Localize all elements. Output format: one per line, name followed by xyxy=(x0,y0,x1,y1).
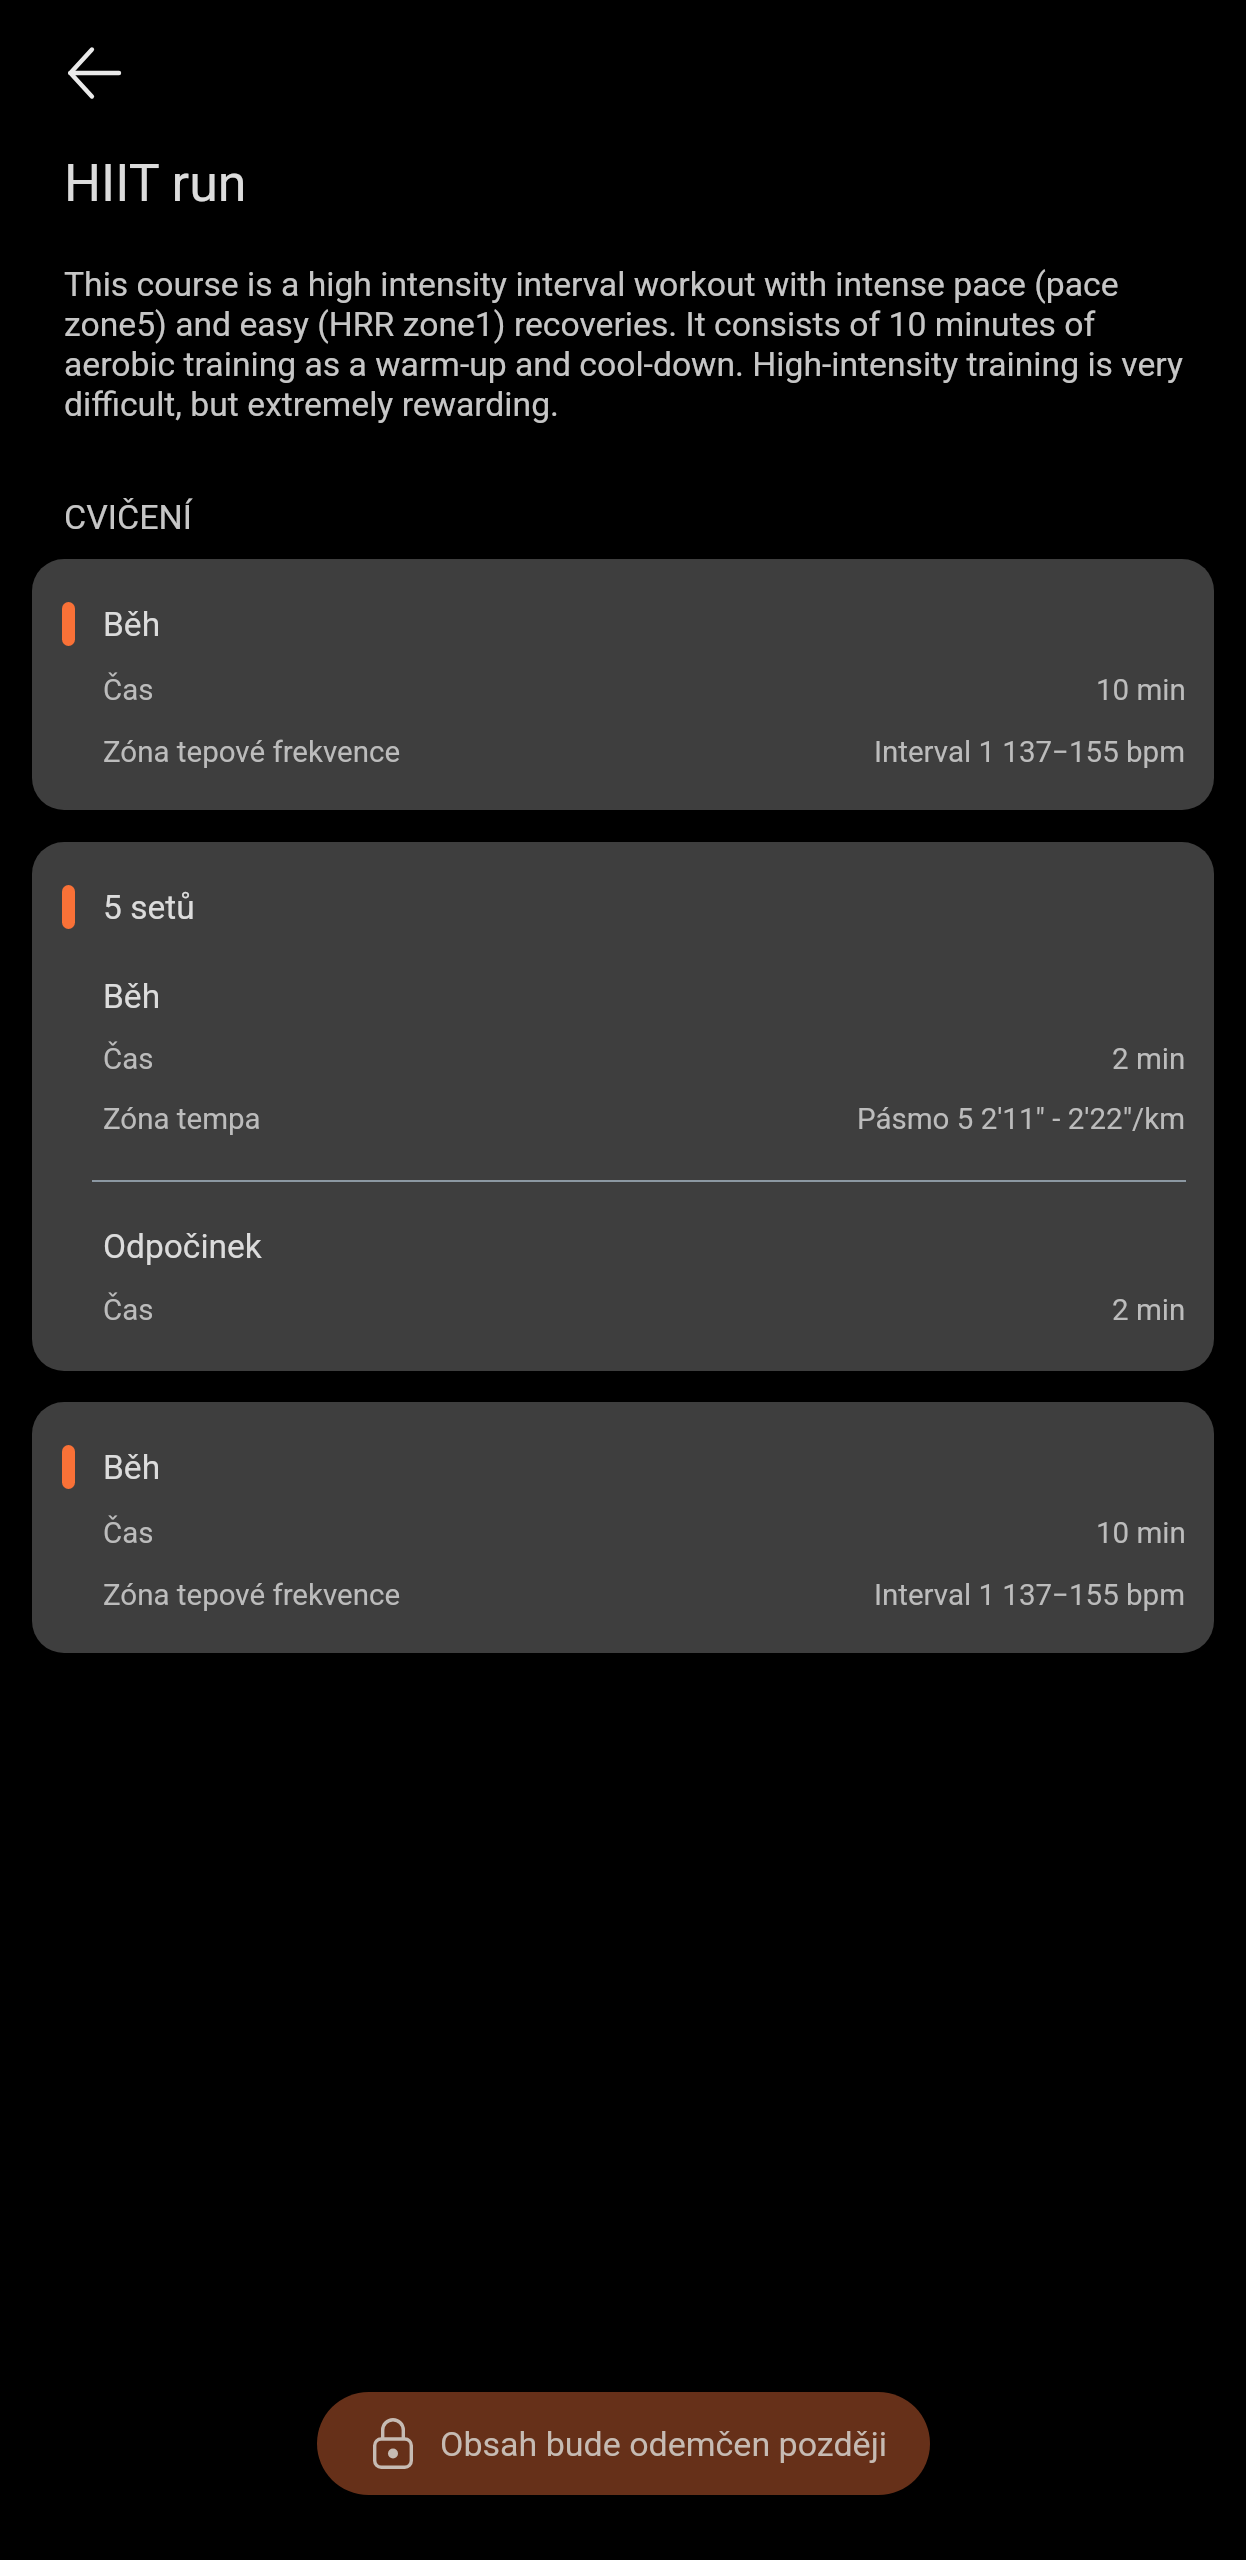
staticText: Pásmo 5 2'11" - 2'22"/km xyxy=(857,1102,1186,1137)
staticText: HIIT run xyxy=(64,153,247,214)
staticText: CVIČENÍ xyxy=(64,497,192,537)
button[interactable]: Běh xyxy=(32,559,1214,810)
staticText: Čas xyxy=(103,1293,154,1328)
staticText: Obsah bude odemčen později xyxy=(440,2424,888,2464)
staticText: Čas xyxy=(103,673,154,708)
staticText: This course is a high intensity interval… xyxy=(64,264,1209,424)
staticText: Zóna tepové frekvence xyxy=(103,1578,401,1613)
button[interactable]: Obsah bude odemčen později xyxy=(317,2392,930,2495)
staticText: 10 min xyxy=(1096,673,1186,708)
button[interactable]: Běh xyxy=(32,1402,1214,1653)
staticText: Běh xyxy=(103,1448,161,1487)
staticText: Zóna tempa xyxy=(103,1102,261,1137)
staticText: 2 min xyxy=(1112,1042,1186,1077)
staticText: Čas xyxy=(103,1516,154,1551)
staticText: Běh xyxy=(103,605,161,644)
button[interactable]: Back xyxy=(40,27,148,119)
button[interactable]: 5 setů xyxy=(32,842,1214,1371)
staticText: Odpočinek xyxy=(103,1227,262,1266)
staticText: 10 min xyxy=(1096,1516,1186,1551)
staticText: 2 min xyxy=(1112,1293,1186,1328)
staticText: Běh xyxy=(103,977,161,1016)
staticText: Čas xyxy=(103,1042,154,1077)
staticText: Interval 1 137−155 bpm xyxy=(874,735,1186,770)
staticText: Zóna tepové frekvence xyxy=(103,735,401,770)
staticText: Interval 1 137−155 bpm xyxy=(874,1578,1186,1613)
staticText: 5 setů xyxy=(103,888,195,927)
